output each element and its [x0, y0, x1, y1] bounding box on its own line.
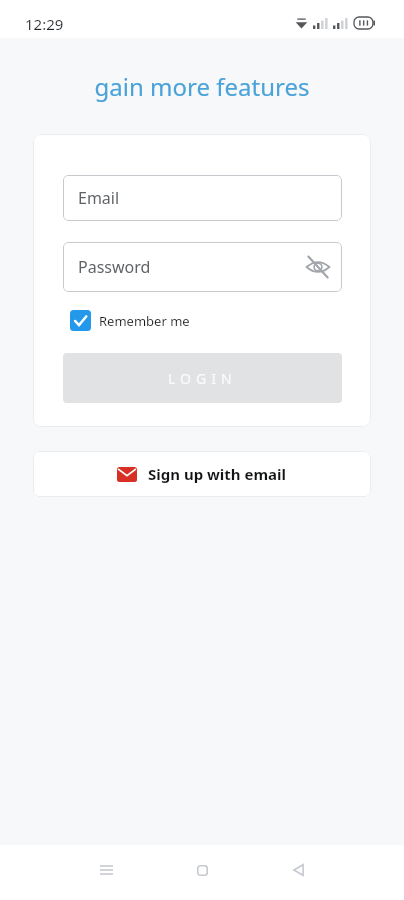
staticText: Email	[78, 187, 120, 209]
button[interactable]	[182, 850, 222, 890]
button[interactable]: Sign up with email	[33, 451, 371, 497]
staticText: 12:29	[25, 14, 64, 34]
staticText: LOGIN	[168, 369, 237, 388]
button[interactable]	[278, 850, 318, 890]
button[interactable]: Email	[63, 175, 342, 221]
staticText: Remember me	[99, 312, 190, 330]
button[interactable]: Remember me	[70, 310, 190, 331]
staticText: Password	[78, 256, 151, 278]
staticText: Sign up with email	[148, 464, 287, 484]
button[interactable]	[86, 850, 126, 890]
button[interactable]: Password	[63, 242, 342, 292]
staticText: gain more features	[0, 70, 404, 103]
